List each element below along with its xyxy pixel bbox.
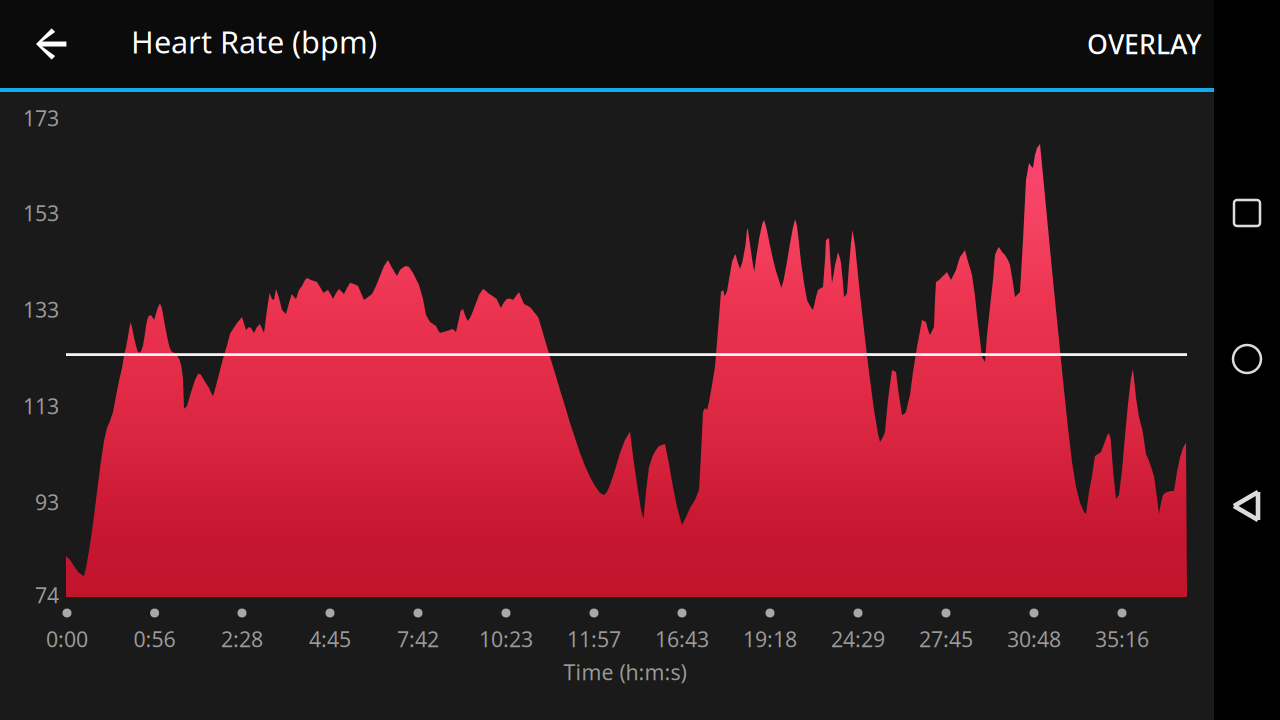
staticText: 173	[23, 104, 59, 132]
button[interactable]: Back	[18, 6, 94, 82]
staticText: 113	[23, 392, 59, 420]
staticText: 0:56	[134, 625, 176, 653]
staticText: 24:29	[831, 625, 885, 653]
staticText: Heart Rate (bpm)	[131, 21, 377, 62]
staticText: 7:42	[397, 625, 439, 653]
staticText: 16:43	[655, 625, 709, 653]
staticText: 2:28	[221, 625, 263, 653]
staticText: 35:16	[1095, 625, 1149, 653]
staticText: 30:48	[1007, 625, 1061, 653]
staticText: 74	[35, 581, 59, 609]
staticText: OVERLAY	[1087, 26, 1202, 62]
staticText: Time (h:m:s)	[563, 658, 686, 686]
staticText: 19:18	[743, 625, 797, 653]
staticText: 93	[35, 488, 59, 516]
staticText: 153	[23, 199, 59, 227]
button[interactable]: Back	[1218, 477, 1276, 535]
staticText: 133	[23, 295, 59, 324]
button[interactable]: OVERLAY	[1046, 12, 1218, 76]
button[interactable]: Home	[1218, 330, 1276, 388]
staticText: 4:45	[309, 625, 351, 653]
staticText: 10:23	[479, 625, 533, 653]
staticText: 0:00	[46, 625, 88, 653]
button[interactable]: Recent apps	[1218, 184, 1276, 242]
staticText: 11:57	[567, 625, 621, 653]
staticText: 27:45	[919, 625, 973, 653]
